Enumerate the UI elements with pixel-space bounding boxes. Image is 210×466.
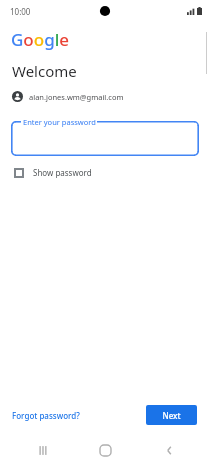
- staticText: Welcome: [12, 61, 77, 81]
- button[interactable]: Back: [147, 435, 191, 466]
- button[interactable]: Next: [146, 405, 197, 425]
- staticText: Show password: [33, 167, 92, 178]
- staticText: Forgot password?: [12, 410, 80, 421]
- button[interactable]: Home: [83, 435, 127, 466]
- button[interactable]: alan.jones.wm@gmail.com: [11, 90, 125, 103]
- staticText: 10:00: [10, 6, 31, 17]
- staticText: Google: [11, 28, 70, 51]
- button[interactable]: Recents: [20, 435, 64, 466]
- button[interactable]: Enter your password: [11, 121, 199, 156]
- staticText: alan.jones.wm@gmail.com: [29, 92, 124, 102]
- button[interactable]: Show password: [12, 164, 94, 181]
- staticText: Enter your password: [23, 117, 96, 127]
- staticText: Next: [162, 410, 181, 421]
- button[interactable]: Forgot password?: [8, 406, 84, 425]
